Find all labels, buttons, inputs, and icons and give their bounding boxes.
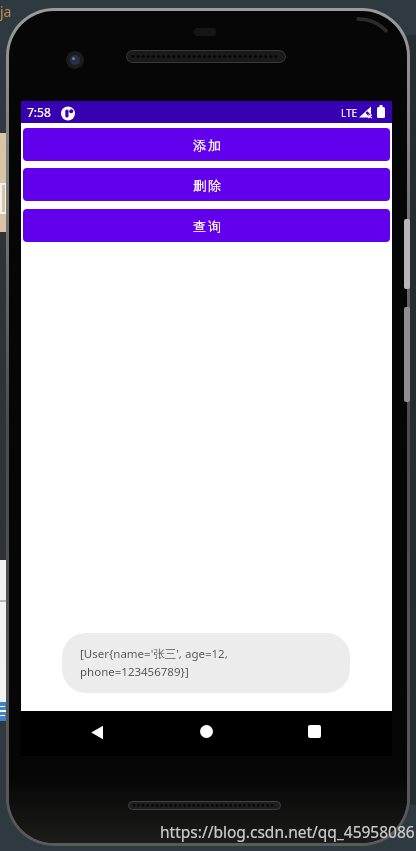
staticText: 7:58 [27, 104, 51, 120]
button[interactable]: 删除 [23, 168, 390, 201]
staticText: [User{name='张三', age=12, phone=123456789… [80, 646, 228, 680]
staticText: ja [0, 2, 12, 21]
button[interactable] [186, 719, 227, 743]
staticText: 添加 [192, 137, 222, 153]
button[interactable] [77, 720, 118, 744]
staticText: LTE [341, 106, 358, 120]
button[interactable]: 查询 [23, 209, 390, 242]
button[interactable] [294, 719, 335, 743]
staticText: https://blog.csdn.net/qq_45958086 [160, 821, 415, 842]
staticText: 查询 [192, 218, 222, 234]
staticText: 删除 [192, 177, 222, 193]
button[interactable]: 添加 [23, 128, 390, 161]
